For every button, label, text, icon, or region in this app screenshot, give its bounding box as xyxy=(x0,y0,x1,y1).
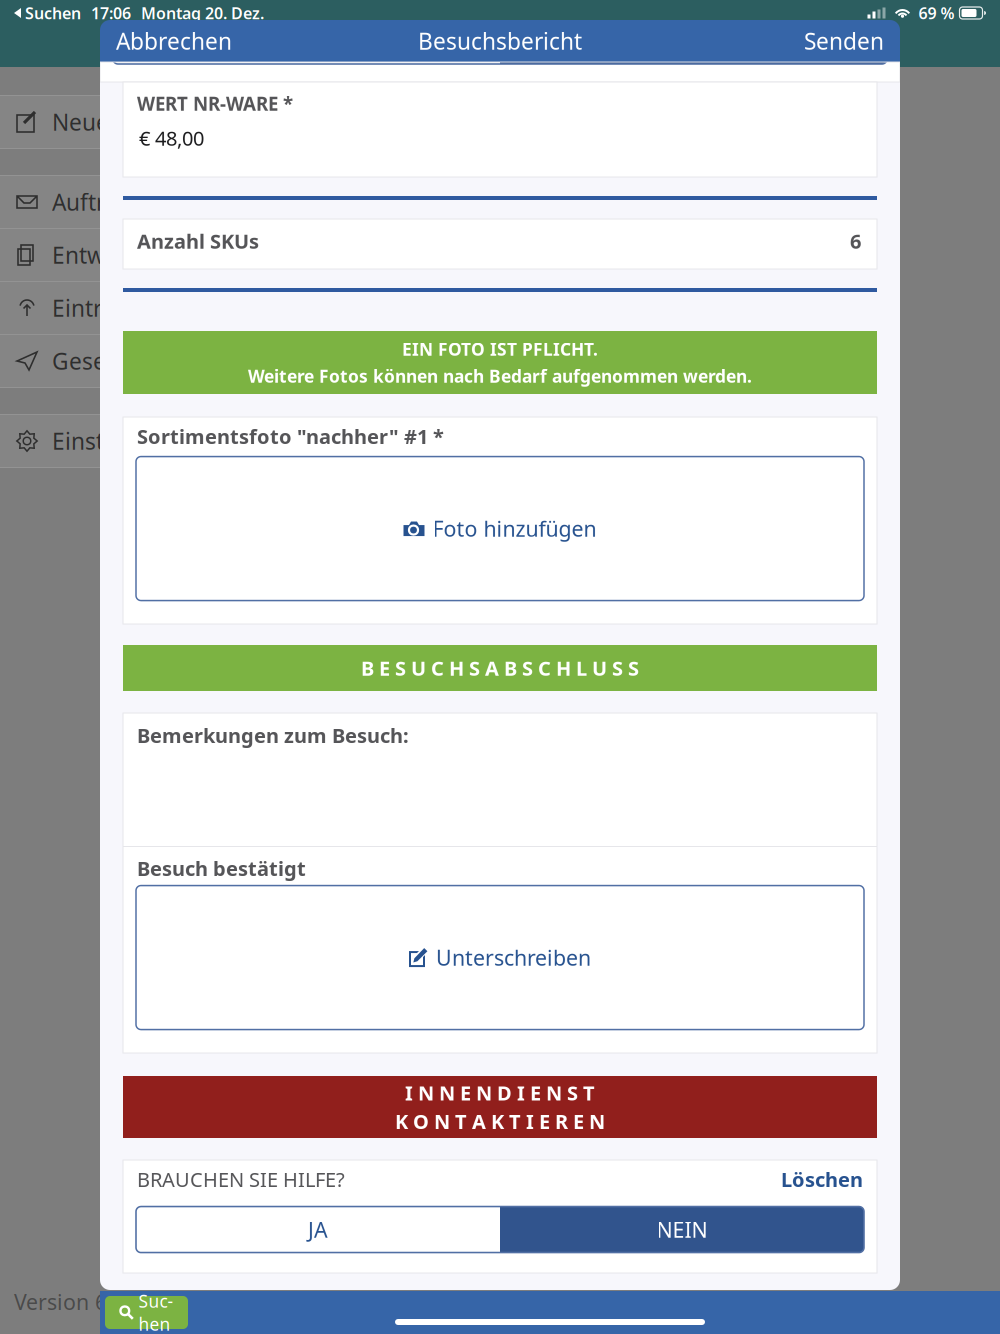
button[interactable]: Abbrechen xyxy=(108,20,240,62)
staticText: Sortimentsfoto "nachher" #1 * xyxy=(137,423,444,450)
staticText: B E S U C H S A B S C H L U S S xyxy=(361,655,639,681)
staticText: JA xyxy=(308,1215,328,1244)
button[interactable]: Foto hinzufügen xyxy=(136,457,864,601)
staticText: I N N E N D I E N S T xyxy=(405,1079,595,1106)
staticText: Einträge xyxy=(52,293,142,323)
staticText: Besuchsbericht xyxy=(418,26,582,56)
staticText: Bemerkungen zum Besuch: xyxy=(137,722,409,749)
staticText: Montag 20. Dez. xyxy=(141,2,264,24)
staticText: Senden xyxy=(804,26,884,56)
staticText: Einstellungen xyxy=(52,426,198,456)
staticText: Gesendet xyxy=(52,346,155,376)
staticText: K O N T A K T I E R E N xyxy=(395,1108,605,1135)
staticText: Aufträge xyxy=(52,187,145,217)
staticText: 6 xyxy=(850,228,861,254)
button[interactable]: JA xyxy=(136,1207,500,1253)
staticText: Suchen xyxy=(138,1289,173,1334)
staticText: BRAUCHEN SIE HILFE? xyxy=(137,1166,345,1193)
staticText: € 48,00 xyxy=(139,125,204,151)
staticText: 69 % xyxy=(918,2,954,24)
button[interactable]: NEIN xyxy=(500,1207,864,1253)
button[interactable]: I N N E N D I E N S T xyxy=(123,1076,877,1138)
staticText: 17:06 xyxy=(91,2,131,24)
staticText: Anzahl SKUs xyxy=(137,228,259,254)
staticText: Suchen xyxy=(21,2,81,24)
staticText: Abbrechen xyxy=(116,26,232,56)
button[interactable]: Senden xyxy=(796,20,892,62)
staticText: Unterschreiben xyxy=(436,943,591,972)
staticText: Version 6.5.0 xyxy=(14,1288,143,1316)
button[interactable]: Löschen xyxy=(781,1166,877,1193)
staticText: WERT NR-WARE * xyxy=(137,91,293,116)
staticText: EIN FOTO IST PFLICHT. xyxy=(402,337,598,360)
button[interactable]: NEIN xyxy=(500,18,887,64)
staticText: NEIN xyxy=(656,1215,707,1244)
staticText: Löschen xyxy=(781,1166,863,1193)
staticText: Weitere Fotos können nach Bedarf aufgeno… xyxy=(248,364,752,387)
button[interactable]: JA xyxy=(113,18,500,64)
staticText: Foto hinzufügen xyxy=(432,514,596,543)
staticText: Neuer Bericht xyxy=(52,107,200,137)
staticText: Besuch bestätigt xyxy=(137,855,306,882)
button[interactable]: Suchen xyxy=(105,1296,188,1329)
staticText: Entwürfe xyxy=(52,240,149,270)
button[interactable]: Unterschreiben xyxy=(136,886,864,1030)
